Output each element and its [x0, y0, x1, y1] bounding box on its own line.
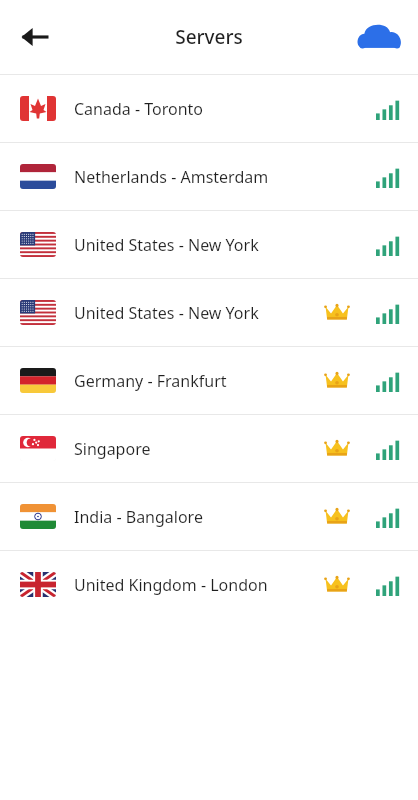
staticText: Netherlands - Amsterdam [74, 166, 314, 188]
other: Signal strength [376, 98, 400, 120]
other: Signal strength [376, 438, 400, 460]
button[interactable]: Back [12, 14, 58, 60]
button[interactable]: Netherlands - Amsterdam [0, 143, 418, 210]
staticText: United States - New York [74, 234, 314, 256]
other: Signal strength [376, 234, 400, 256]
button[interactable]: Germany - Frankfurt [0, 347, 418, 414]
other: Back [20, 22, 50, 52]
staticText: Servers [175, 24, 243, 50]
button[interactable]: Cloud [356, 13, 404, 61]
other: Premium server [324, 438, 350, 460]
staticText: United Kingdom - London [74, 574, 314, 596]
button[interactable]: Singapore [0, 415, 418, 482]
button[interactable]: India - Bangalore [0, 483, 418, 550]
staticText: India - Bangalore [74, 506, 314, 528]
other: Premium server [324, 370, 350, 392]
other: Signal strength [376, 166, 400, 188]
other: Signal strength [376, 574, 400, 596]
staticText: Canada - Toronto [74, 98, 314, 120]
staticText: United States - New York [74, 302, 314, 324]
other: Premium server [324, 302, 350, 324]
staticText: Singapore [74, 438, 314, 460]
other: Signal strength [376, 302, 400, 324]
button[interactable]: Canada - Toronto [0, 75, 418, 142]
button[interactable]: United States - New York [0, 211, 418, 278]
button[interactable]: United States - New York [0, 279, 418, 346]
other: Signal strength [376, 370, 400, 392]
button[interactable]: United Kingdom - London [0, 551, 418, 618]
staticText: Germany - Frankfurt [74, 370, 314, 392]
other: Premium server [324, 574, 350, 596]
other: Premium server [324, 506, 350, 528]
other: Cloud [357, 21, 403, 53]
other: Signal strength [376, 506, 400, 528]
